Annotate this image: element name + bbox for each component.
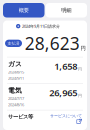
staticText: 2024/9/11 [8, 75, 24, 81]
staticText: 明細 [61, 7, 71, 14]
staticText: 円 [78, 93, 82, 98]
staticText: 円 [78, 67, 82, 71]
staticText: 1,658 [54, 60, 77, 72]
button[interactable]: 明細 [45, 3, 87, 17]
staticText: 26,965 [49, 86, 77, 99]
staticText: 2024/8/15 [8, 69, 24, 75]
staticText: 28,623 [25, 32, 80, 55]
staticText: 2024/8/16 [8, 102, 24, 107]
button[interactable]: 概要 [3, 3, 44, 17]
staticText: サービスについて [50, 113, 82, 118]
staticText: 円 [80, 45, 85, 52]
staticText: 電気 [8, 86, 22, 95]
staticText: 2024年9月11日請求分 [22, 23, 60, 29]
staticText: 2024/7/17 [8, 96, 24, 101]
staticText: 支払済 [7, 41, 19, 46]
button[interactable]: サービスについて [50, 113, 82, 124]
staticText: ガス [8, 60, 22, 68]
staticText: 概要 [19, 7, 29, 14]
staticText: サービス等 [8, 113, 33, 120]
